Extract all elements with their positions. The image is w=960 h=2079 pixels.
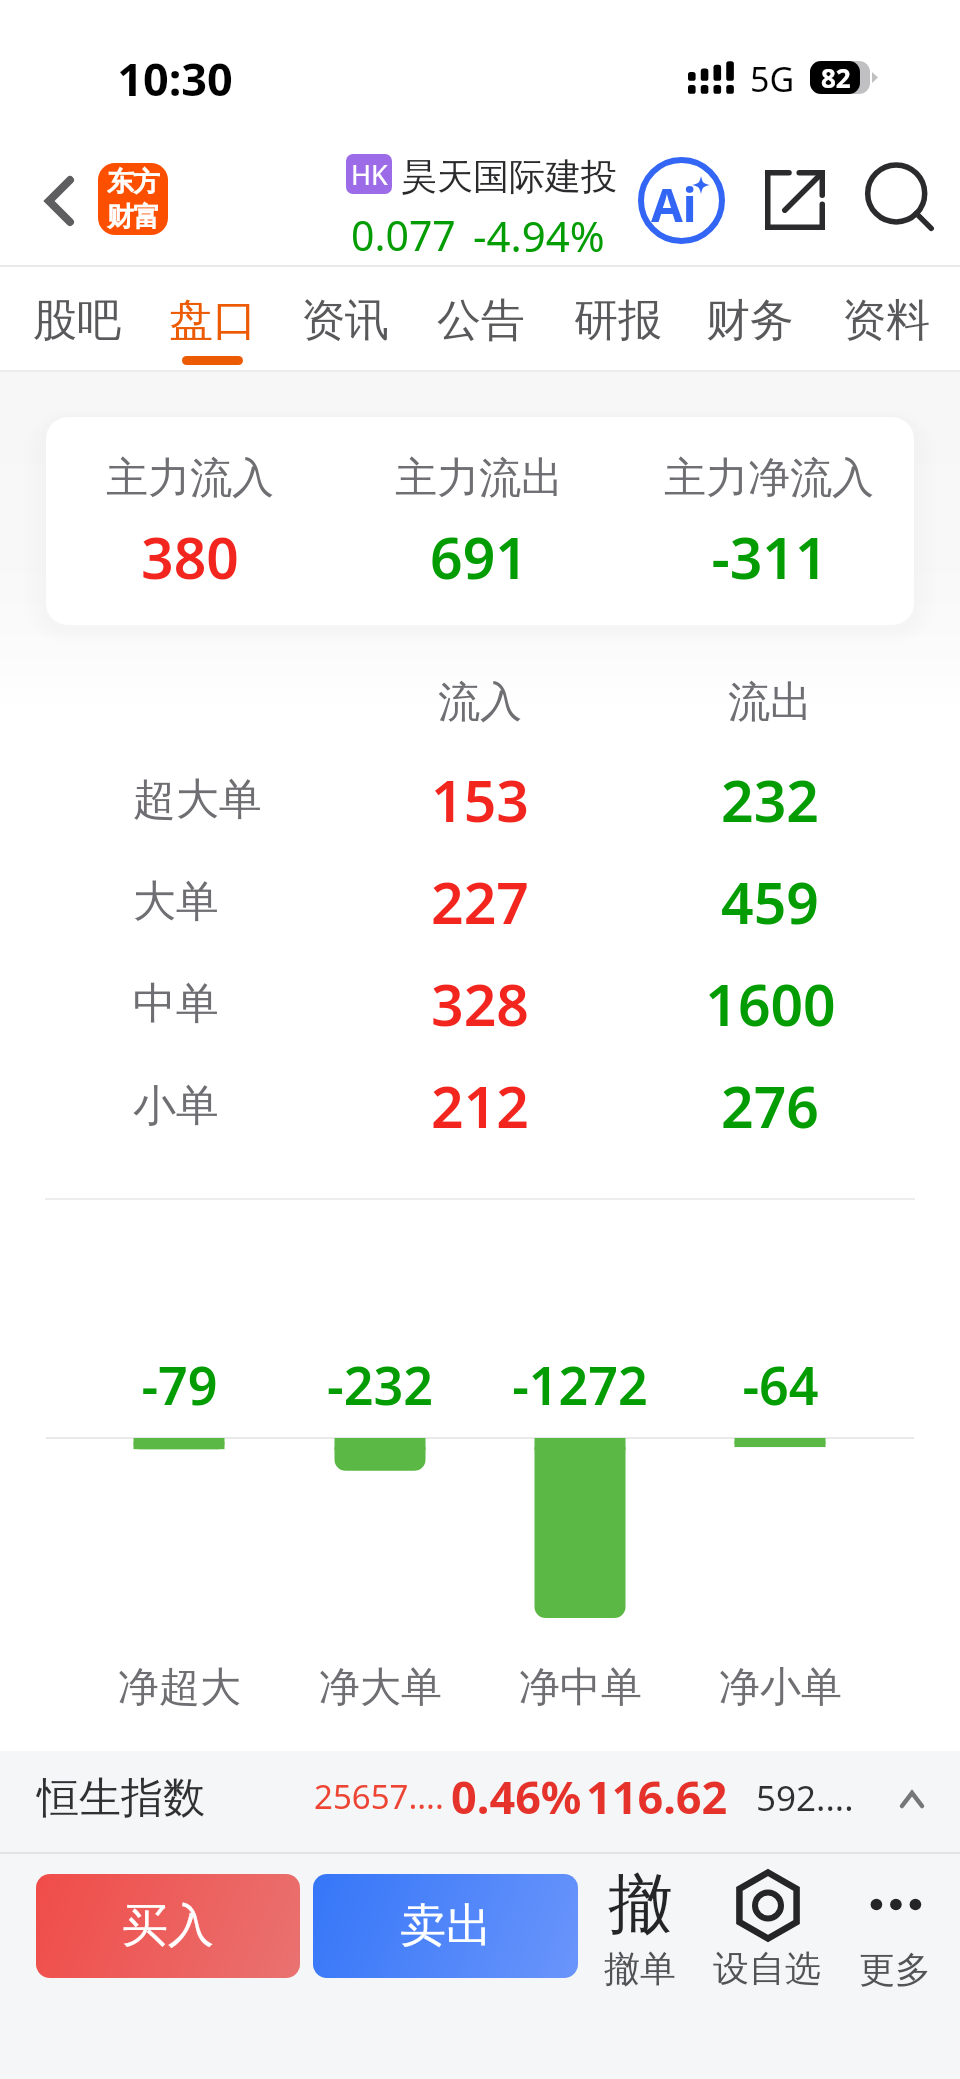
staticText: 主力流入 xyxy=(106,452,274,505)
staticText: 卖出 xyxy=(400,1897,492,1955)
staticText: -311 xyxy=(711,518,828,596)
staticText: 380 xyxy=(141,518,239,596)
staticText: 公告 xyxy=(437,293,525,348)
staticText: 227 xyxy=(431,863,529,941)
staticText: 流入 xyxy=(438,676,522,729)
button[interactable]: 资讯 xyxy=(283,272,407,368)
button[interactable] xyxy=(0,1751,960,1852)
staticText: 主力净流入 xyxy=(664,452,874,505)
staticText: -232 xyxy=(327,1349,433,1420)
button[interactable] xyxy=(46,417,914,625)
staticText: 主力流出 xyxy=(395,452,563,505)
staticText: 财富 xyxy=(107,200,160,234)
staticText: 超大单 xyxy=(133,773,262,827)
staticText: 459 xyxy=(721,863,819,941)
button[interactable]: Share xyxy=(750,155,840,245)
staticText: 691 xyxy=(430,518,528,596)
staticText: 10:30 xyxy=(117,48,233,109)
staticText: 276 xyxy=(721,1067,819,1145)
staticText: 买入 xyxy=(122,1897,214,1955)
staticText: 82 xyxy=(821,60,851,93)
staticText: 153 xyxy=(431,761,529,839)
button[interactable]: 财务 xyxy=(688,272,812,368)
staticText: 资讯 xyxy=(301,293,389,348)
button[interactable] xyxy=(705,1862,831,1992)
staticText: -1272 xyxy=(512,1349,648,1420)
staticText: 净超大 xyxy=(118,1662,241,1714)
button[interactable]: 买入 xyxy=(36,1874,300,1978)
button[interactable]: 盘口 xyxy=(151,272,275,368)
staticText: 大单 xyxy=(133,875,219,929)
button[interactable]: AI assistant xyxy=(633,152,729,248)
button[interactable] xyxy=(580,1862,700,1992)
staticText: 撤 xyxy=(608,1863,673,1943)
staticText: 净小单 xyxy=(719,1662,842,1714)
button[interactable]: 研报 xyxy=(556,272,680,368)
staticText: 中单 xyxy=(133,977,219,1031)
staticText: 资料 xyxy=(842,293,930,348)
staticText: 25657.... xyxy=(314,1774,444,1819)
button[interactable]: East Money home xyxy=(98,163,168,235)
button[interactable]: 公告 xyxy=(419,272,543,368)
staticText: 财务 xyxy=(706,293,794,348)
staticText: 股吧 xyxy=(33,293,121,348)
button[interactable]: Search xyxy=(852,152,942,242)
staticText: 232 xyxy=(721,761,819,839)
staticText: 592.... xyxy=(756,1774,854,1822)
staticText: 212 xyxy=(431,1067,529,1145)
staticText: -4.94% xyxy=(473,207,605,264)
staticText: 更多 xyxy=(859,1947,931,1992)
staticText: 0.46% xyxy=(451,1766,582,1827)
staticText: 5G xyxy=(750,56,795,102)
staticText: -64 xyxy=(742,1349,819,1420)
staticText: 设自选 xyxy=(713,1946,821,1991)
staticText: 小单 xyxy=(133,1079,219,1133)
button[interactable]: Expand xyxy=(882,1766,942,1832)
staticText: Ai xyxy=(651,173,697,236)
staticText: 盘口 xyxy=(169,293,257,348)
staticText: 恒生指数 xyxy=(37,1772,205,1825)
staticText: 116.62 xyxy=(586,1766,728,1827)
staticText: 流出 xyxy=(728,676,812,729)
staticText: HK xyxy=(351,156,388,193)
staticText: 东方 xyxy=(107,165,160,199)
button[interactable]: More xyxy=(840,1862,955,1992)
button[interactable]: 股吧 xyxy=(15,272,139,368)
staticText: 328 xyxy=(431,965,529,1043)
staticText: -79 xyxy=(141,1349,218,1420)
staticText: 撤单 xyxy=(604,1946,676,1991)
button[interactable]: Back xyxy=(14,155,104,247)
staticText: 净中单 xyxy=(519,1662,642,1714)
staticText: 昊天国际建投 xyxy=(401,154,617,199)
staticText: 净大单 xyxy=(319,1662,442,1714)
staticText: 0.077 xyxy=(351,207,456,263)
staticText: 1600 xyxy=(705,965,836,1043)
button[interactable]: 资料 xyxy=(824,272,948,368)
staticText: 研报 xyxy=(574,293,662,348)
button[interactable]: 卖出 xyxy=(313,1874,578,1978)
